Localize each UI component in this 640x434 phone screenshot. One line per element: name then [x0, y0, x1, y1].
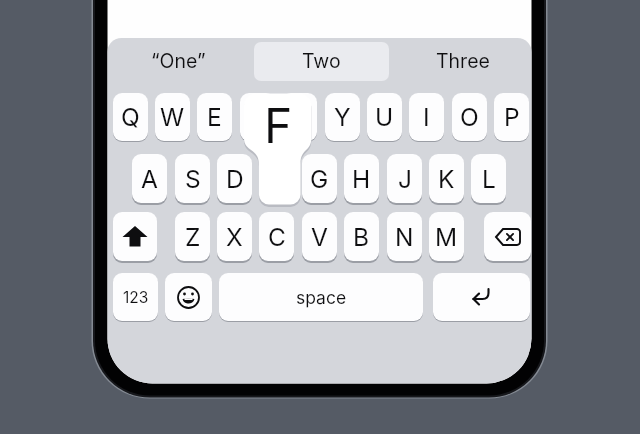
staticText: A: [141, 164, 158, 194]
staticText: U: [375, 102, 394, 132]
button[interactable]: [433, 273, 530, 321]
staticText: Z: [185, 222, 201, 252]
button[interactable]: Y: [325, 93, 360, 141]
staticText: G: [310, 164, 329, 194]
button[interactable]: Two: [251, 45, 391, 77]
button[interactable]: 123: [113, 273, 158, 321]
button[interactable]: A: [132, 154, 167, 203]
staticText: C: [268, 222, 286, 252]
staticText: W: [160, 102, 185, 132]
button[interactable]: Three: [393, 45, 533, 77]
button[interactable]: U: [367, 93, 402, 141]
button[interactable]: E: [197, 93, 232, 141]
staticText: K: [438, 164, 455, 194]
button[interactable]: T: [282, 93, 317, 141]
button[interactable]: L: [471, 154, 506, 203]
staticText: L: [482, 164, 496, 194]
staticText: M: [435, 222, 458, 252]
button[interactable]: P: [494, 93, 529, 141]
staticText: B: [353, 222, 370, 252]
staticText: Two: [302, 49, 341, 73]
button[interactable]: [484, 212, 531, 261]
staticText: J: [398, 164, 412, 194]
button[interactable]: B: [344, 212, 379, 261]
button[interactable]: J: [387, 154, 422, 203]
staticText: N: [395, 222, 414, 252]
button[interactable]: K: [429, 154, 464, 203]
button[interactable]: I: [409, 93, 444, 141]
staticText: H: [352, 164, 371, 194]
button[interactable]: X: [217, 212, 252, 261]
button[interactable]: “One”: [108, 45, 248, 77]
staticText: P: [504, 102, 520, 132]
staticText: Three: [436, 49, 490, 73]
button[interactable]: W: [155, 93, 190, 141]
staticText: F: [264, 96, 293, 154]
button[interactable]: D: [217, 154, 252, 203]
staticText: D: [226, 164, 244, 194]
button[interactable]: O: [452, 93, 487, 141]
button[interactable]: S: [175, 154, 210, 203]
staticText: 123: [123, 288, 149, 307]
button[interactable]: [165, 273, 212, 321]
staticText: E: [207, 102, 222, 132]
staticText: I: [423, 102, 430, 132]
staticText: Q: [121, 102, 140, 132]
button[interactable]: [113, 212, 157, 261]
button[interactable]: [254, 42, 389, 81]
staticText: space: [296, 287, 347, 308]
button[interactable]: H: [344, 154, 379, 203]
staticText: Y: [334, 102, 351, 132]
button[interactable]: Z: [175, 212, 210, 261]
button[interactable]: C: [259, 212, 294, 261]
button[interactable]: Q: [113, 93, 148, 141]
button[interactable]: G: [302, 154, 337, 203]
staticText: O: [460, 102, 479, 132]
staticText: X: [226, 222, 243, 252]
button[interactable]: N: [387, 212, 422, 261]
staticText: “One”: [151, 49, 206, 73]
button[interactable]: V: [302, 212, 337, 261]
staticText: S: [185, 164, 201, 194]
staticText: V: [311, 222, 328, 252]
button[interactable]: space: [219, 273, 423, 321]
button[interactable]: M: [429, 212, 464, 261]
button[interactable]: R: [240, 93, 275, 141]
button[interactable]: F: [238, 93, 318, 157]
